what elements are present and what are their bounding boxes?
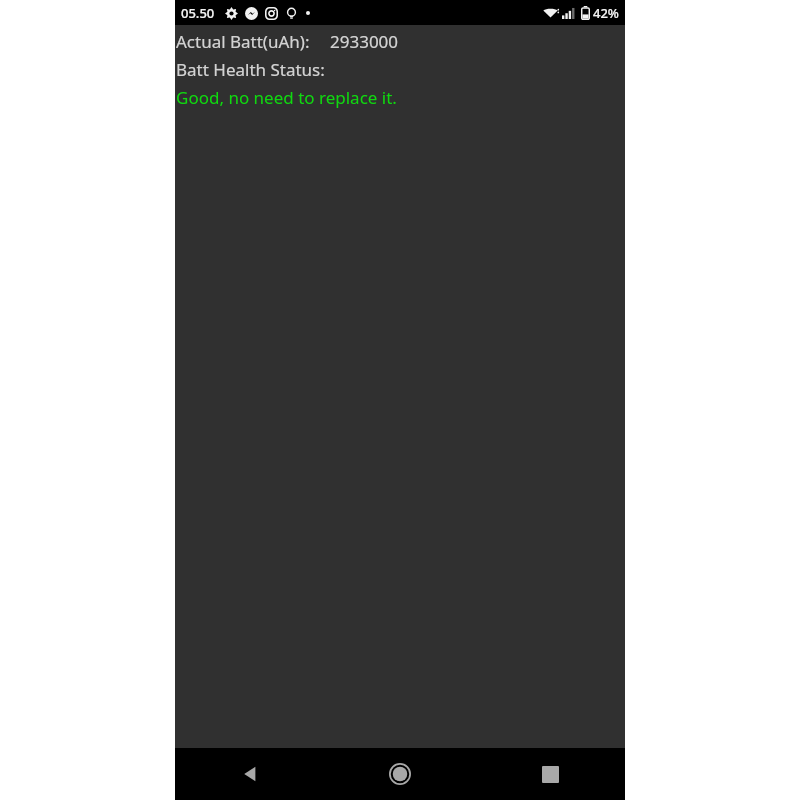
staticText: Batt Health Status: xyxy=(176,58,325,81)
staticText: Good, no need to replace it. xyxy=(176,86,397,109)
staticText: 05.50 xyxy=(181,4,215,22)
button[interactable]: Home xyxy=(325,748,475,800)
staticText: Actual Batt(uAh): xyxy=(176,30,310,53)
staticText: 2933000 xyxy=(330,30,399,53)
button[interactable]: Recent apps xyxy=(475,748,625,800)
button[interactable]: Back xyxy=(175,748,325,800)
staticText: 42% xyxy=(593,4,619,22)
